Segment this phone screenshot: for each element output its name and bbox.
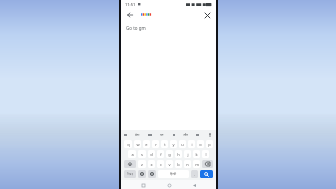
button[interactable]: Voice input xyxy=(207,132,213,138)
button[interactable]: Suggestion xyxy=(148,133,152,137)
button[interactable]: Go to gm xyxy=(126,23,211,32)
staticText: Go to gm xyxy=(126,25,146,31)
button[interactable]: i xyxy=(188,140,195,148)
staticText: i xyxy=(191,142,193,147)
staticText: m xyxy=(195,162,199,167)
button[interactable]: और xyxy=(183,132,188,137)
staticText: g xyxy=(168,152,171,157)
button[interactable]: r xyxy=(152,140,159,148)
button[interactable]: w xyxy=(134,140,141,148)
button[interactable]: Close xyxy=(202,10,212,20)
staticText: u xyxy=(181,142,184,147)
button[interactable]: p xyxy=(206,140,213,148)
button[interactable]: Shift xyxy=(124,160,136,168)
button[interactable]: l xyxy=(202,150,209,158)
button[interactable]: y xyxy=(170,140,177,148)
staticText: w xyxy=(136,142,140,147)
staticText: हिन्दी xyxy=(170,172,177,176)
button[interactable]: Search xyxy=(200,170,213,178)
staticText: 11:51 xyxy=(125,2,136,7)
staticText: x xyxy=(150,162,153,167)
button[interactable]: h xyxy=(175,150,182,158)
staticText: और xyxy=(183,132,188,137)
button[interactable]: b xyxy=(175,160,182,168)
staticText: v xyxy=(168,162,171,167)
button[interactable]: Emoji xyxy=(148,170,156,178)
button[interactable]: o xyxy=(197,140,204,148)
button[interactable]: मेरा xyxy=(135,132,140,137)
staticText: h xyxy=(177,152,180,157)
staticText: j xyxy=(187,152,189,157)
button[interactable]: z xyxy=(138,160,146,168)
button[interactable]: Back xyxy=(125,10,135,20)
staticText: मेरा xyxy=(135,132,140,137)
staticText: n xyxy=(186,162,189,167)
staticText: c xyxy=(160,162,162,167)
button[interactable]: u xyxy=(179,140,186,148)
button[interactable]: e xyxy=(143,140,150,148)
staticText: t xyxy=(164,142,166,147)
button[interactable]: Suggestion xyxy=(124,133,127,137)
button[interactable]: c xyxy=(157,160,164,168)
button[interactable]: Language xyxy=(138,170,146,178)
staticText: k xyxy=(195,152,198,157)
staticText: पर xyxy=(160,132,164,137)
button[interactable]: पर xyxy=(160,132,164,137)
staticText: . xyxy=(194,172,196,177)
button[interactable]: v xyxy=(166,160,173,168)
staticText: z xyxy=(141,162,143,167)
staticText: o xyxy=(199,142,202,147)
button[interactable]: s xyxy=(138,150,146,158)
staticText: f xyxy=(160,152,162,157)
staticText: q xyxy=(127,142,130,147)
staticText: d xyxy=(150,152,153,157)
button[interactable]: Suggestion xyxy=(173,133,175,137)
button[interactable]: m xyxy=(193,160,200,168)
staticText: a xyxy=(131,152,134,157)
staticText: s xyxy=(141,152,143,157)
staticText: b xyxy=(177,162,180,167)
button[interactable]: Suggestion xyxy=(196,133,199,137)
staticText: r xyxy=(155,142,157,147)
staticText: e xyxy=(145,142,148,147)
button[interactable]: g xyxy=(166,150,173,158)
button[interactable]: f xyxy=(157,150,164,158)
button[interactable]: Back xyxy=(190,181,198,189)
button[interactable]: Recents xyxy=(139,181,147,189)
button[interactable]: q xyxy=(124,140,132,148)
button[interactable]: d xyxy=(148,150,155,158)
button[interactable]: Period xyxy=(191,170,198,178)
staticText: ?१२३ xyxy=(127,172,133,176)
button[interactable]: k xyxy=(193,150,200,158)
staticText: p xyxy=(208,142,211,147)
button[interactable]: Symbols xyxy=(124,170,136,178)
button[interactable]: a xyxy=(128,150,136,158)
button[interactable]: n xyxy=(184,160,191,168)
staticText: y xyxy=(172,142,175,147)
button[interactable]: Home xyxy=(165,181,173,189)
button[interactable]: Backspace xyxy=(202,160,213,168)
button[interactable]: x xyxy=(148,160,155,168)
button[interactable]: t xyxy=(161,140,168,148)
staticText: l xyxy=(205,152,207,157)
button[interactable]: j xyxy=(184,150,191,158)
button[interactable]: हिन्दी xyxy=(158,170,189,178)
